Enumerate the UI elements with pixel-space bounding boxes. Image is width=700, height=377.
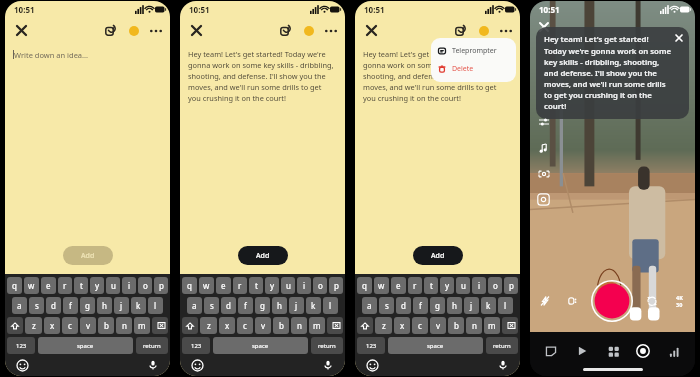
button[interactable]: return	[486, 337, 518, 354]
button[interactable]: Close	[536, 19, 552, 35]
button[interactable]: x	[394, 317, 410, 334]
button[interactable]: c	[62, 317, 78, 334]
button[interactable]: Play	[571, 340, 593, 362]
button[interactable]: Delete	[431, 60, 516, 78]
button[interactable]: k	[306, 297, 321, 314]
button[interactable]: Backspace	[152, 317, 168, 334]
button[interactable]: Gallery	[535, 191, 552, 208]
button[interactable]: AI assist	[299, 21, 318, 40]
button[interactable]: Notes	[540, 340, 562, 362]
button[interactable]: Add	[63, 246, 113, 265]
button[interactable]: 123	[357, 337, 385, 354]
button[interactable]: t	[249, 277, 263, 294]
button[interactable]: Add	[413, 246, 463, 265]
button[interactable]: h	[272, 297, 287, 314]
button[interactable]: z	[375, 317, 392, 334]
button[interactable]: b	[448, 317, 464, 334]
button[interactable]: o	[313, 277, 327, 294]
button[interactable]: Shift	[7, 317, 23, 334]
button[interactable]: return	[136, 337, 168, 354]
button[interactable]: Flip camera	[644, 293, 660, 309]
button[interactable]: w	[24, 277, 39, 294]
button[interactable]: Effects	[535, 165, 552, 182]
button[interactable]: i	[297, 277, 311, 294]
button[interactable]: t	[424, 277, 438, 294]
button[interactable]: space	[388, 337, 483, 354]
button[interactable]: Dictate	[320, 357, 336, 373]
button[interactable]: y	[440, 277, 454, 294]
button[interactable]: d	[396, 297, 411, 314]
button[interactable]: Regenerate	[100, 21, 119, 40]
button[interactable]: Hide teleprompter	[673, 32, 684, 43]
button[interactable]: o	[138, 277, 152, 294]
button[interactable]: Shift	[182, 317, 198, 334]
button[interactable]: f	[413, 297, 428, 314]
button[interactable]: p	[154, 277, 168, 294]
button[interactable]: g	[255, 297, 270, 314]
button[interactable]: m	[134, 317, 150, 334]
button[interactable]: Dictate	[145, 357, 161, 373]
button[interactable]: Analytics	[663, 340, 685, 362]
button[interactable]: Music	[535, 139, 552, 156]
button[interactable]: g	[80, 297, 95, 314]
button[interactable]: Apps	[602, 340, 624, 362]
button[interactable]: n	[291, 317, 307, 334]
button[interactable]: v	[255, 317, 271, 334]
button[interactable]: r	[408, 277, 422, 294]
button[interactable]: Close	[186, 20, 206, 40]
button[interactable]: u	[456, 277, 470, 294]
button[interactable]: z	[200, 317, 217, 334]
button[interactable]: l	[323, 297, 338, 314]
button[interactable]: w	[374, 277, 389, 294]
button[interactable]: Emoji	[364, 357, 380, 373]
button[interactable]: Teleprompter	[431, 42, 516, 60]
button[interactable]: Regenerate	[450, 21, 469, 40]
button[interactable]: f	[63, 297, 78, 314]
button[interactable]: More options	[146, 21, 165, 40]
button[interactable]: Record	[632, 340, 654, 362]
button[interactable]: h	[97, 297, 112, 314]
button[interactable]: space	[213, 337, 308, 354]
button[interactable]: i	[472, 277, 486, 294]
button[interactable]: Add	[238, 246, 288, 265]
button[interactable]: Regenerate	[275, 21, 294, 40]
button[interactable]: u	[106, 277, 120, 294]
button[interactable]: Close	[361, 20, 381, 40]
button[interactable]: w	[199, 277, 214, 294]
button[interactable]: a	[187, 297, 202, 314]
button[interactable]: x	[219, 317, 235, 334]
button[interactable]: f	[238, 297, 253, 314]
button[interactable]: z	[25, 317, 42, 334]
button[interactable]: Backspace	[327, 317, 343, 334]
button[interactable]: q	[7, 277, 22, 294]
button[interactable]: Dictate	[495, 357, 511, 373]
button[interactable]: e	[216, 277, 231, 294]
button[interactable]: a	[362, 297, 377, 314]
button[interactable]: b	[98, 317, 114, 334]
button[interactable]: d	[221, 297, 236, 314]
button[interactable]: s	[204, 297, 219, 314]
button[interactable]: r	[58, 277, 72, 294]
button[interactable]: j	[464, 297, 479, 314]
button[interactable]: 4K 30fps	[670, 292, 688, 310]
button[interactable]: Emoji	[14, 357, 30, 373]
button[interactable]: m	[309, 317, 325, 334]
button[interactable]: Shift	[357, 317, 373, 334]
button[interactable]: k	[481, 297, 496, 314]
button[interactable]: More options	[321, 21, 340, 40]
button[interactable]: y	[265, 277, 279, 294]
button[interactable]: p	[329, 277, 343, 294]
button[interactable]: More options	[496, 21, 515, 40]
button[interactable]: 123	[182, 337, 210, 354]
button[interactable]: space	[38, 337, 133, 354]
button[interactable]: Flash	[537, 293, 553, 309]
button[interactable]: Emoji	[189, 357, 205, 373]
button[interactable]: v	[430, 317, 446, 334]
button[interactable]: x	[44, 317, 60, 334]
button[interactable]: Adjust	[535, 113, 552, 130]
button[interactable]: c	[237, 317, 253, 334]
button[interactable]: a	[12, 297, 27, 314]
button[interactable]: d	[46, 297, 61, 314]
button[interactable]: b	[273, 317, 289, 334]
button[interactable]: m	[484, 317, 500, 334]
